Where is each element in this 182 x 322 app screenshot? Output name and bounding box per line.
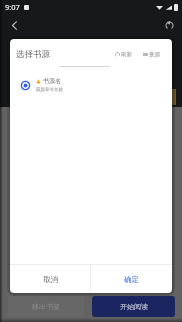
button[interactable]: 移出书架 [8, 296, 84, 317]
staticText: 换源 [149, 51, 160, 58]
button[interactable]: 换源 [143, 51, 160, 58]
staticText: 最新章节名称 [36, 87, 63, 93]
staticText: 9:07 [5, 2, 20, 12]
staticText: 刷新 [121, 51, 132, 58]
staticText: 移出书架 [32, 302, 60, 311]
button[interactable]: 确定 [91, 265, 172, 293]
staticText: 书源名 [43, 77, 61, 85]
staticText: 选择书源 [16, 49, 50, 60]
button[interactable]: 书源名 [10, 74, 172, 96]
staticText: 开始阅读 [120, 302, 148, 311]
button[interactable]: 取消 [10, 265, 90, 293]
button[interactable]: Refresh [160, 16, 178, 34]
staticText: 取消 [43, 275, 58, 284]
button[interactable]: 刷新 [115, 51, 132, 58]
staticText: 确定 [124, 275, 139, 284]
button[interactable]: Back [5, 16, 23, 34]
button[interactable]: 开始阅读 [92, 296, 175, 317]
